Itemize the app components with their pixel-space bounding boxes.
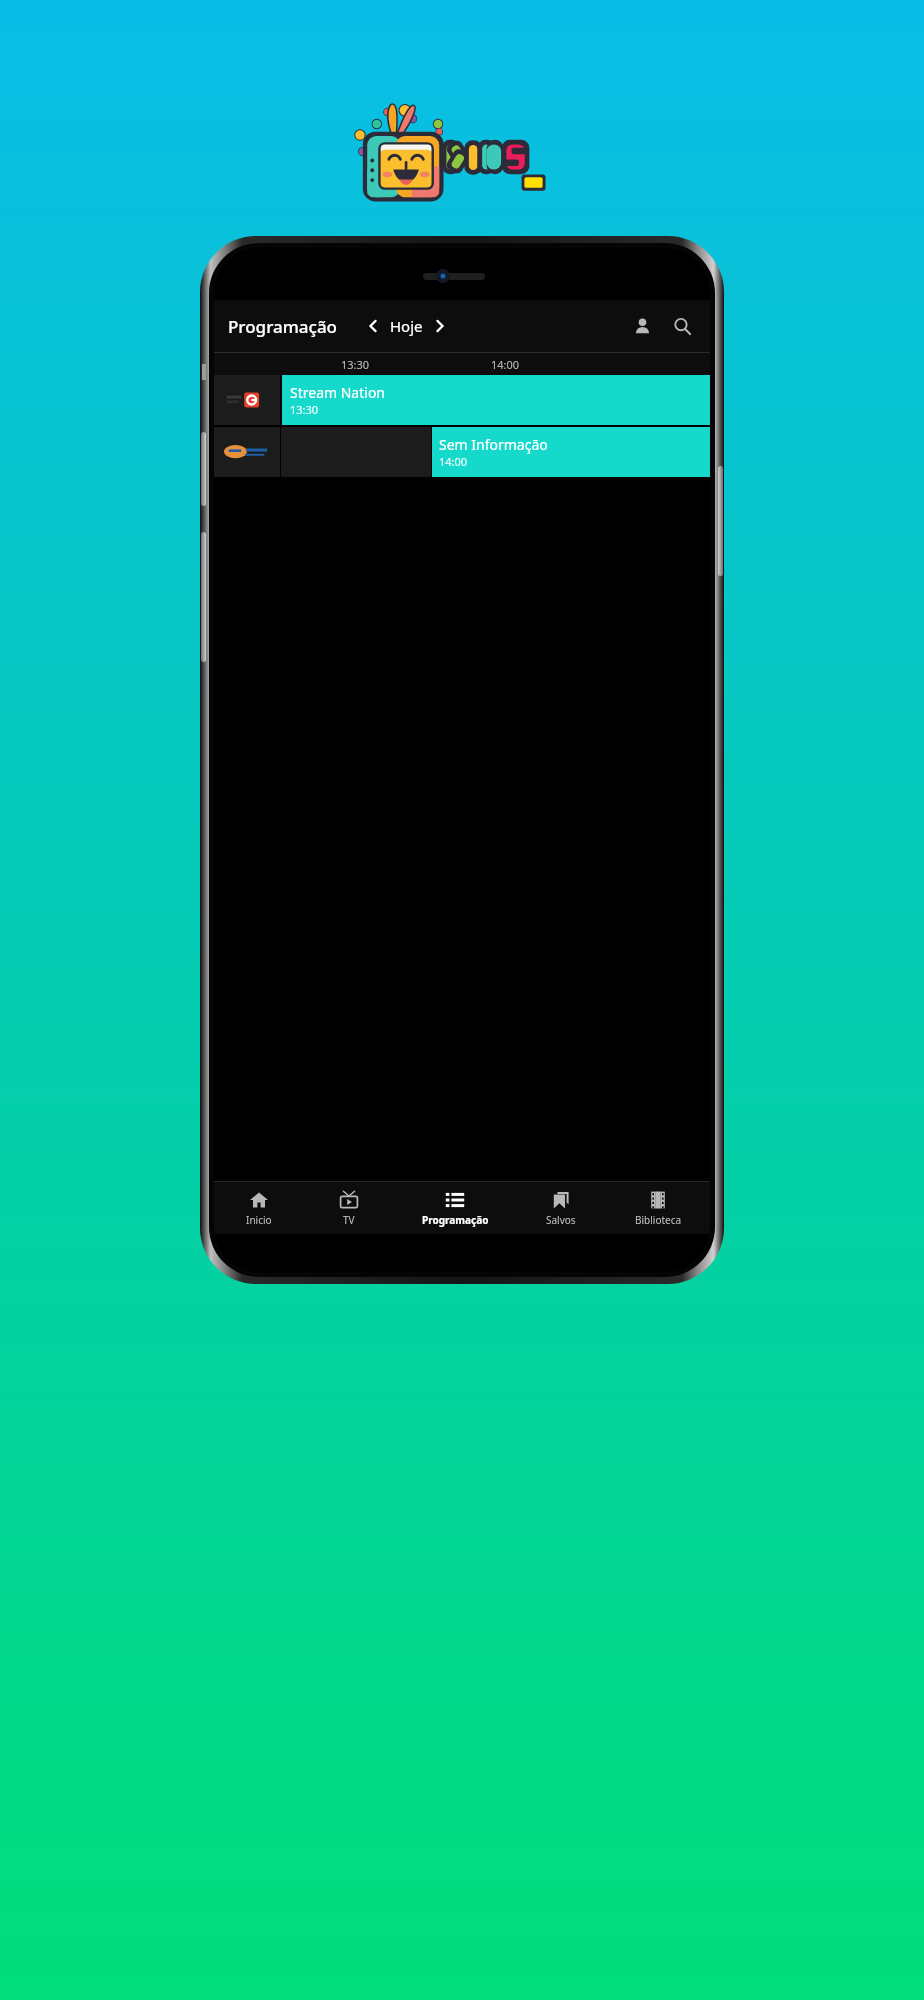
button[interactable]: Hoje: [390, 316, 423, 336]
staticText: Inicio: [246, 1213, 272, 1227]
staticText: Stream Nation: [290, 383, 386, 402]
button[interactable]: TV: [304, 1182, 394, 1234]
staticText: Salvos: [546, 1213, 576, 1227]
button[interactable]: Biblioteca: [606, 1182, 710, 1234]
button[interactable]: Buscar: [662, 306, 702, 346]
button[interactable]: Próximo dia: [423, 309, 457, 343]
button[interactable]: [214, 427, 280, 477]
button[interactable]: Inicio: [214, 1182, 304, 1234]
staticText: Sem Informação: [439, 435, 548, 454]
staticText: TV: [343, 1213, 355, 1227]
staticText: Programação: [422, 1213, 489, 1227]
staticText: Programação: [228, 315, 338, 338]
button[interactable]: [214, 375, 280, 425]
staticText: 13:30: [280, 357, 430, 372]
button[interactable]: Sem Informação: [432, 427, 710, 477]
staticText: Biblioteca: [635, 1213, 682, 1227]
staticText: 13:30: [290, 402, 319, 417]
button[interactable]: Perfil: [622, 306, 662, 346]
staticText: 14:00: [430, 357, 580, 372]
button[interactable]: Programação: [394, 1182, 516, 1234]
button[interactable]: Salvos: [516, 1182, 606, 1234]
staticText: 14:00: [439, 454, 468, 469]
button[interactable]: Stream Nation: [282, 375, 710, 425]
button[interactable]: Dia anterior: [356, 309, 390, 343]
